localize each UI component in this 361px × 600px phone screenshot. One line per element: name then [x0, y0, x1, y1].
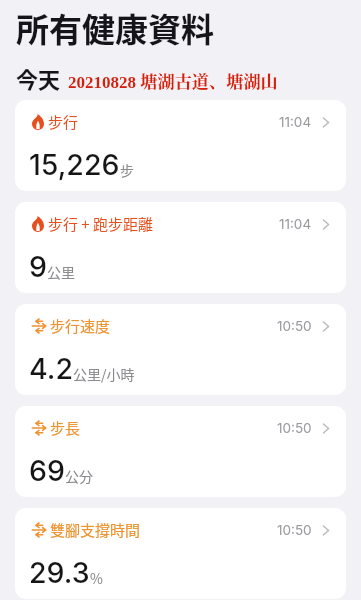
staticText: 10:50 [277, 420, 312, 436]
staticText: 公里/小時 [73, 364, 135, 384]
staticText: 69 [29, 453, 65, 487]
staticText: 所有健康資料 [16, 4, 214, 52]
button[interactable]: 步行 + 跑步距離 [15, 202, 346, 293]
button[interactable]: 步長 [15, 406, 346, 497]
staticText: 11:04 [279, 216, 312, 232]
staticText: 步長 [50, 417, 81, 439]
button[interactable]: 步行 [15, 100, 346, 191]
staticText: 9 [29, 249, 47, 283]
staticText: 公里 [47, 262, 75, 282]
button[interactable]: 步行速度 [15, 304, 346, 395]
staticText: 步行 [48, 111, 79, 133]
staticText: 步 [120, 160, 134, 180]
staticText: 29.3 [29, 555, 90, 589]
staticText: 11:04 [279, 114, 312, 130]
staticText: 步行速度 [50, 315, 111, 337]
staticText: % [90, 568, 103, 588]
staticText: 雙腳支撐時間 [50, 519, 141, 541]
staticText: 15,226 [29, 147, 120, 181]
staticText: 20210828 塘湖古道、塘湖山 [68, 68, 278, 93]
staticText: 10:50 [277, 318, 312, 334]
staticText: 公分 [65, 466, 93, 486]
staticText: 10:50 [277, 522, 312, 538]
staticText: 今天 [16, 62, 61, 94]
staticText: 4.2 [29, 351, 73, 385]
staticText: 步行 + 跑步距離 [48, 213, 154, 235]
button[interactable]: 雙腳支撐時間 [15, 508, 346, 599]
